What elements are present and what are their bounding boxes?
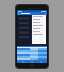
button[interactable]: List xyxy=(29,60,35,63)
button[interactable] xyxy=(33,19,45,21)
button[interactable]: Settings xyxy=(38,60,44,63)
button[interactable] xyxy=(33,25,45,27)
button[interactable] xyxy=(17,52,47,54)
button[interactable]: More options xyxy=(44,13,46,15)
button[interactable] xyxy=(33,31,45,33)
button[interactable]: Menu xyxy=(17,12,47,15)
button[interactable] xyxy=(33,34,45,36)
button[interactable] xyxy=(17,58,47,60)
button[interactable]: Home xyxy=(20,60,26,63)
button[interactable] xyxy=(17,54,47,56)
button[interactable] xyxy=(17,56,47,58)
button[interactable] xyxy=(33,28,45,30)
button[interactable] xyxy=(32,15,46,44)
button[interactable] xyxy=(33,22,45,24)
button[interactable] xyxy=(17,50,47,52)
button[interactable]: Menu xyxy=(18,13,20,15)
button[interactable] xyxy=(33,16,45,18)
button[interactable] xyxy=(17,48,47,50)
